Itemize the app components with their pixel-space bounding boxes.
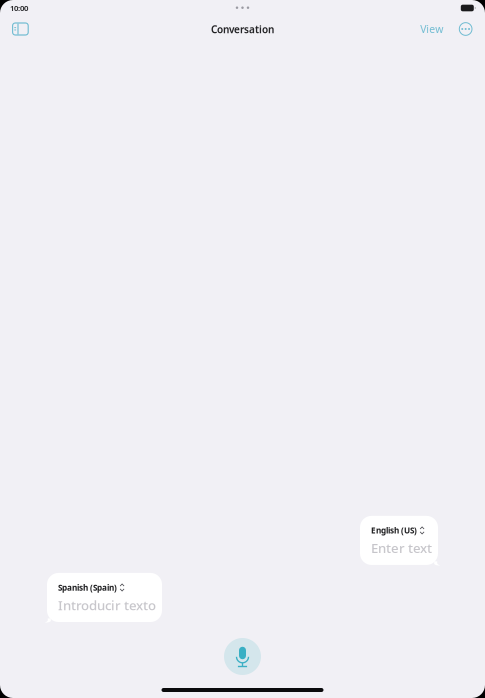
button[interactable]: Start Listening bbox=[224, 638, 261, 675]
staticText: 10:00 bbox=[10, 3, 28, 13]
staticText: View bbox=[420, 22, 443, 36]
button[interactable]: Show Sidebar bbox=[7, 18, 34, 40]
staticText: English (US) bbox=[371, 525, 417, 536]
button[interactable]: English (US) bbox=[371, 525, 425, 536]
staticText: Introducir texto bbox=[58, 596, 156, 614]
button[interactable]: Spanish (Spain) bbox=[47, 573, 162, 622]
button[interactable]: More bbox=[455, 19, 476, 39]
button[interactable]: Enter text bbox=[371, 539, 432, 557]
button[interactable]: English (US) bbox=[360, 516, 438, 565]
button[interactable]: Introducir texto bbox=[58, 596, 156, 614]
staticText: Enter text bbox=[371, 539, 432, 557]
staticText: Conversation bbox=[211, 22, 274, 36]
staticText: Spanish (Spain) bbox=[58, 582, 117, 593]
button[interactable]: Spanish (Spain) bbox=[58, 582, 125, 593]
button[interactable]: View bbox=[415, 17, 448, 41]
